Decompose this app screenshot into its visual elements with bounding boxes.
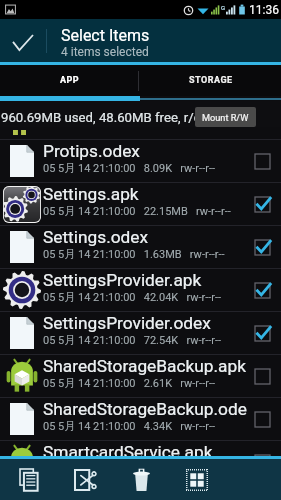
staticText: SettingsProvider.odex <box>43 313 211 333</box>
button[interactable]: Selected <box>243 183 281 225</box>
staticText: 05 5月 14 21:10:00 1.22MB rw-r--r-- <box>43 462 225 476</box>
staticText: 960.69MB used, 48.60MB free, r/o <box>1 110 202 125</box>
staticText: STORAGE <box>189 75 233 86</box>
button[interactable]: Cut <box>57 459 113 500</box>
staticText: Mount R/W <box>202 112 249 123</box>
staticText: 05 5月 14 21:10:00 72.54K rw-r--r-- <box>43 333 222 347</box>
staticText: Settings.apk <box>43 184 139 204</box>
button[interactable]: SharedStorageBackup.odex <box>0 398 281 440</box>
button[interactable]: STORAGE <box>140 65 281 96</box>
staticText: 05 5月 14 21:10:00 2.61K rw-r--r-- <box>43 376 215 390</box>
button[interactable]: Selected <box>243 226 281 268</box>
staticText: APP <box>60 75 80 86</box>
staticText: SettingsProvider.apk <box>43 270 202 290</box>
button[interactable]: Copy <box>0 459 57 500</box>
staticText: SharedStorageBackup.odex <box>43 399 255 419</box>
button[interactable]: SettingsProvider.odex <box>0 312 281 354</box>
button[interactable]: Parent folder <box>0 127 281 139</box>
staticText: 05 5月 14 21:10:00 42.04K rw-r--r-- <box>43 290 222 304</box>
button[interactable]: Settings.odex <box>0 226 281 268</box>
staticText: 11:36 <box>249 3 279 17</box>
staticText: 05 5月 14 21:10:00 8.09K rw-r--r-- <box>43 161 215 175</box>
button[interactable]: SharedStorageBackup.apk <box>0 355 281 397</box>
button[interactable]: Mount R/W <box>195 107 256 127</box>
staticText: G <box>221 4 226 11</box>
button[interactable]: SettingsProvider.apk <box>0 269 281 311</box>
staticText: 05 5月 14 21:10:00 1.63MB rw-r--r-- <box>43 247 225 261</box>
staticText: SmartcardService.apk <box>43 442 213 462</box>
button[interactable]: Delete <box>113 459 169 500</box>
button[interactable]: Apps <box>169 459 225 500</box>
button[interactable]: Protips.odex <box>0 140 281 182</box>
button[interactable]: SmartcardService.apk <box>0 441 281 483</box>
button[interactable]: APP <box>0 65 140 96</box>
button[interactable]: Not selected <box>243 140 281 182</box>
staticText: SharedStorageBackup.apk <box>43 356 246 376</box>
button[interactable]: Confirm selection <box>0 19 46 62</box>
button[interactable]: Selected <box>243 312 281 354</box>
button[interactable]: Not selected <box>243 355 281 397</box>
staticText: Protips.odex <box>43 141 140 161</box>
staticText: 4 items selected <box>61 45 149 59</box>
staticText: Settings.odex <box>43 227 149 247</box>
button[interactable]: Not selected <box>243 398 281 440</box>
button[interactable]: Selected <box>243 269 281 311</box>
staticText: 05 5月 14 21:10:00 22.15MB rw-r--r-- <box>43 204 231 218</box>
staticText: Select Items <box>61 26 150 45</box>
button[interactable]: Settings.apk <box>0 183 281 225</box>
button[interactable]: Not selected <box>243 441 281 483</box>
staticText: 05 5月 14 21:10:00 4.34K rw-r--r-- <box>43 419 215 433</box>
